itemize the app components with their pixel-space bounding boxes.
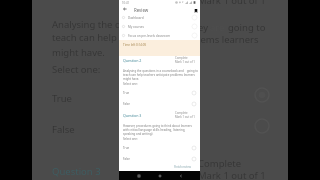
staticText: Focus on pre-levels classroom — [128, 34, 171, 38]
staticText: However, procedures going to think about… — [123, 124, 192, 136]
staticText: False — [123, 157, 130, 161]
staticText: Mark 1 out of 1 — [175, 115, 195, 119]
staticText: Mark 1 out of 1 — [198, 0, 266, 7]
button[interactable]: False — [119, 100, 200, 107]
staticText: Mark 1 out of 1 — [175, 60, 195, 64]
staticText: ey — [198, 21, 209, 34]
staticText: Analysing the questions in a coursebook … — [123, 69, 199, 81]
staticText: lems learners — [198, 33, 259, 46]
staticText: ▾ — [182, 1, 184, 4]
staticText: False — [52, 123, 75, 136]
staticText: Select one: — [123, 82, 138, 86]
staticText: Dashboard — [128, 16, 144, 20]
staticText: True — [52, 92, 72, 105]
staticText: Review — [134, 7, 149, 13]
staticText: Time left 0:14:05 — [123, 43, 147, 47]
staticText: Select one: — [123, 137, 138, 141]
staticText: Analysing the q — [52, 18, 121, 31]
staticText: Mark 1 out of 1 — [198, 169, 266, 180]
staticText: might have. — [52, 46, 105, 59]
staticText: Complete — [198, 157, 242, 170]
button[interactable]: False — [119, 155, 200, 162]
button[interactable]: Time left 0:14:05 — [119, 40, 200, 56]
button[interactable]: Back — [121, 5, 129, 13]
button[interactable]: Question 2 — [123, 58, 142, 63]
button[interactable]: Back — [178, 173, 183, 178]
staticText: Complete — [175, 111, 188, 115]
button[interactable]: Focus on pre-levels classroom — [119, 31, 200, 40]
button[interactable]: My courses — [119, 22, 200, 31]
button[interactable]: Finish review — [174, 165, 191, 169]
staticText: ◆ — [179, 1, 181, 4]
button[interactable]: True — [119, 144, 200, 151]
button[interactable]: Bookmark — [191, 6, 200, 15]
staticText: True — [123, 91, 130, 95]
button[interactable]: Recents — [136, 173, 141, 178]
staticText: False — [123, 102, 130, 106]
button[interactable]: Question 3 — [123, 113, 142, 118]
staticText: going to — [228, 21, 266, 34]
staticText: Question 3 — [52, 165, 101, 178]
staticText: True — [123, 146, 130, 150]
staticText: My courses — [128, 25, 144, 29]
button[interactable]: Home — [157, 173, 162, 178]
staticText: Complete — [175, 56, 188, 60]
staticText: 10:41 — [122, 1, 130, 5]
button[interactable]: Dashboard — [119, 13, 200, 22]
staticText: Select one: — [52, 63, 101, 76]
staticText: teach can help — [52, 31, 117, 44]
button[interactable]: True — [119, 89, 200, 96]
